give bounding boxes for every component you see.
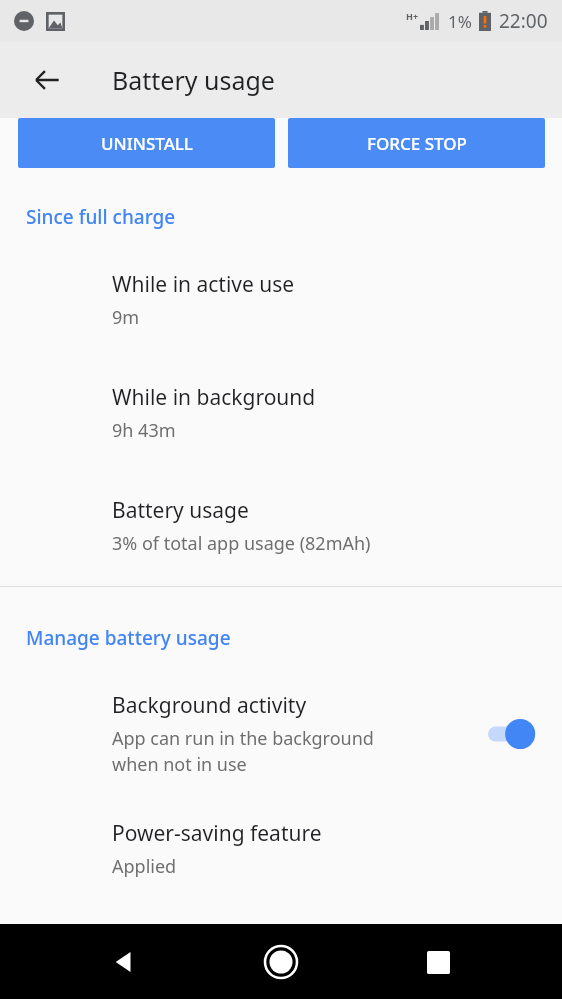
staticText: Applied <box>112 854 177 879</box>
button[interactable]: FORCE STOP <box>288 118 545 168</box>
staticText: App can run in the background when not i… <box>112 726 374 777</box>
staticText: 3% of total app usage (82mAh) <box>112 531 371 556</box>
staticText: Battery usage <box>112 496 249 525</box>
button[interactable]: Back <box>23 56 71 104</box>
button[interactable]: UNINSTALL <box>18 118 275 168</box>
staticText: 9h 43m <box>112 418 176 443</box>
staticText: FORCE STOP <box>367 132 467 155</box>
button[interactable]: Background activity <box>0 691 562 777</box>
staticText: 22:00 <box>499 8 548 34</box>
staticText: Since full charge <box>26 204 176 230</box>
staticText: While in background <box>112 383 316 412</box>
staticText: Battery usage <box>112 63 275 97</box>
staticText: H+ <box>406 10 419 22</box>
button[interactable]: Back <box>98 936 150 988</box>
button[interactable]: While in background <box>0 383 562 443</box>
staticText: 1% <box>448 10 472 33</box>
button[interactable]: While in active use <box>0 270 562 330</box>
button[interactable]: Battery usage <box>0 496 562 556</box>
staticText: UNINSTALL <box>101 132 193 155</box>
staticText: Background activity <box>112 691 307 720</box>
staticText: 9m <box>112 305 140 330</box>
staticText: Manage battery usage <box>26 625 231 651</box>
staticText: While in active use <box>112 270 295 299</box>
button[interactable]: Power-saving feature <box>0 819 562 879</box>
button[interactable]: Home <box>255 936 307 988</box>
staticText: Power-saving feature <box>112 819 322 848</box>
button[interactable]: Recent apps <box>412 936 464 988</box>
